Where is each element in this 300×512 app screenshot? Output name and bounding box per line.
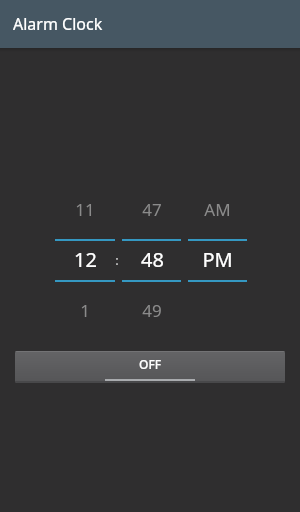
button[interactable]: OFF [15,351,285,383]
button[interactable] [188,190,247,330]
staticText: 49 [142,299,162,322]
button[interactable] [55,190,115,330]
staticText: PM [202,246,233,273]
button[interactable] [122,190,181,330]
staticText: AM [204,198,231,221]
staticText: 47 [142,198,162,221]
staticText: OFF [139,356,162,372]
button[interactable]: Alarm Clock [0,0,300,48]
staticText: 12 [74,246,97,273]
staticText: Alarm Clock [13,13,103,35]
staticText: 11 [75,198,95,221]
staticText: 48 [141,246,164,273]
staticText: : [115,251,119,269]
staticText: 1 [80,299,90,322]
